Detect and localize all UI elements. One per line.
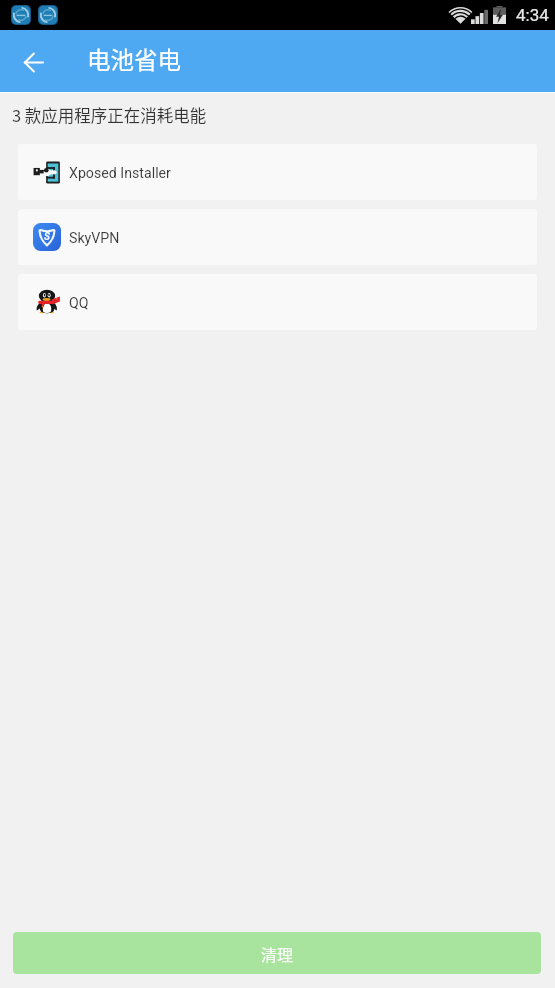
button[interactable]: Xposed Installer: [18, 144, 537, 200]
staticText: S: [44, 231, 50, 243]
button[interactable]: S: [18, 209, 537, 265]
staticText: 清理: [261, 942, 294, 965]
staticText: 3 款应用程序正在消耗电能: [12, 103, 207, 127]
staticText: QQ: [69, 295, 89, 312]
staticText: Xposed Installer: [69, 165, 171, 182]
other: Nox notification: [11, 5, 31, 25]
button[interactable]: Back: [11, 40, 55, 84]
staticText: 4:34: [516, 5, 549, 25]
staticText: SkyVPN: [69, 230, 120, 247]
other: Nox notification: [38, 5, 58, 25]
button[interactable]: QQ: [18, 274, 537, 330]
button[interactable]: 清理: [13, 932, 541, 974]
staticText: 电池省电: [87, 42, 181, 76]
